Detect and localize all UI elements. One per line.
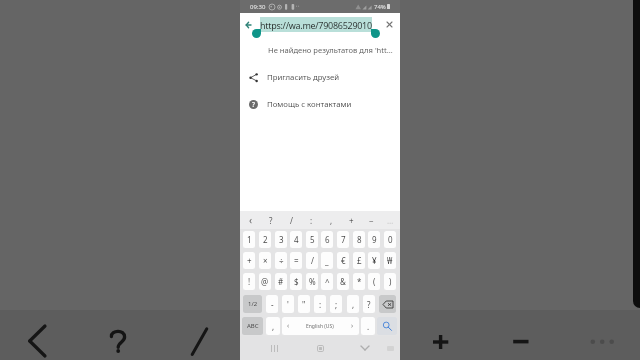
staticText: 1 [247,234,252,245]
staticText: @ [261,276,269,287]
staticText: , [272,321,275,332]
staticText: % [309,276,316,287]
staticText: : [319,299,322,310]
button[interactable]: Clear text [381,15,399,33]
button[interactable]: ( [368,273,380,290]
staticText: − [369,215,374,226]
button[interactable]: 4 [290,231,302,248]
button[interactable]: Search [377,317,397,335]
button[interactable]: / [306,252,318,269]
button[interactable]: ¥ [368,252,380,269]
button[interactable]: : [314,295,326,313]
button[interactable]: 1/2 [243,295,262,313]
button[interactable]: 1 [243,231,255,248]
button[interactable]: % [306,273,318,290]
button[interactable]: $ [290,273,302,290]
staticText: 5 [310,234,315,245]
button[interactable]: # [275,273,287,290]
button[interactable]: ‹ [282,317,359,335]
staticText: ^ [325,276,330,287]
button[interactable]: € [337,252,349,269]
button[interactable]: @ [259,273,271,290]
staticText: Пригласить друзей [267,72,340,83]
staticText: ? [269,215,273,226]
button[interactable]: - [266,295,278,313]
staticText: ? [367,299,371,310]
button[interactable]: ₩ [384,252,396,269]
staticText: / [290,215,293,226]
button[interactable]: Recent apps [264,336,284,360]
staticText: 7 [341,234,346,245]
button[interactable]: ) [384,273,396,290]
staticText: ₩ [387,255,393,266]
button[interactable]: ÷ [275,252,287,269]
button[interactable]: − [361,211,381,229]
button[interactable]: * [353,273,365,290]
button[interactable]: _ [321,252,333,269]
button[interactable]: 5 [306,231,318,248]
button[interactable]: , [266,317,280,335]
button[interactable]: Back [241,14,258,34]
button[interactable]: . [361,317,375,335]
staticText: $ [294,276,299,287]
staticText: 74% [374,3,386,11]
button[interactable]: & [337,273,349,290]
button[interactable]: 0 [384,231,396,248]
staticText: 1/2 [248,300,258,308]
staticText: : [310,215,313,226]
staticText: , [352,299,355,310]
staticText: ÷ [279,255,284,266]
staticText: … [387,215,394,226]
staticText: * [357,276,362,287]
button[interactable]: ! [243,273,255,290]
button[interactable]: 9 [368,231,380,248]
button[interactable]: ; [330,295,342,313]
staticText: › [351,321,354,331]
button[interactable]: / [281,211,301,229]
staticText: / [311,255,314,266]
button[interactable]: 6 [321,231,333,248]
staticText: Помощь с контактами [267,99,352,110]
button[interactable]: ^ [321,273,333,290]
staticText: 2 [263,234,268,245]
staticText: 8 [357,234,362,245]
button[interactable]: : [301,211,321,229]
staticText: ‹ [287,321,290,331]
staticText: https://wa.me/79086529010 [260,19,372,31]
button[interactable]: 8 [353,231,365,248]
button[interactable]: ? [363,295,375,313]
staticText: " [302,299,306,310]
button[interactable]: Пригласить друзей [240,67,400,87]
button[interactable]: ‹ [241,211,261,229]
button[interactable]: 3 [275,231,287,248]
staticText: € [341,255,346,266]
staticText: ) [389,276,392,287]
button[interactable]: 2 [259,231,271,248]
staticText: - [271,299,274,310]
staticText: ! [248,276,251,287]
staticText: # [278,276,284,287]
staticText: 09:30 [250,3,266,11]
button[interactable]: , [321,211,341,229]
button[interactable]: , [347,295,359,313]
button[interactable]: 7 [337,231,349,248]
button[interactable]: + [243,252,255,269]
button[interactable]: ' [282,295,294,313]
staticText: & [340,276,346,287]
button[interactable]: = [290,252,302,269]
button[interactable]: + [341,211,361,229]
button[interactable]: ? [261,211,281,229]
button[interactable]: × [259,252,271,269]
staticText: 9 [372,234,377,245]
button[interactable]: Backspace [379,295,396,313]
button[interactable]: ? [240,94,400,114]
staticText: 3 [279,234,284,245]
button[interactable]: Hide keyboard [355,336,375,360]
button[interactable]: ABC [242,317,263,335]
button[interactable]: Home [310,336,330,360]
staticText: ABC [247,322,259,330]
button[interactable]: Switch keyboard [382,336,398,360]
button[interactable]: " [298,295,310,313]
button[interactable]: £ [353,252,365,269]
